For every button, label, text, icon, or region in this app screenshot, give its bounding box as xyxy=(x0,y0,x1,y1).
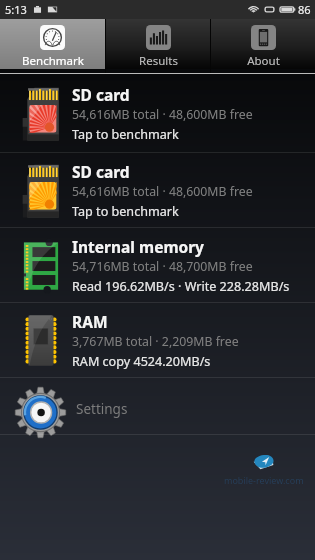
staticText: Settings xyxy=(76,400,128,418)
button[interactable]: Results xyxy=(106,19,210,69)
staticText: Tap to benchmark xyxy=(72,203,179,220)
button[interactable]: Settings xyxy=(0,378,315,434)
button[interactable]: RAM xyxy=(0,303,315,377)
button[interactable]: SD card xyxy=(0,153,315,227)
staticText: RAM xyxy=(72,311,108,332)
staticText: Results xyxy=(139,53,178,69)
staticText: SD card xyxy=(72,161,130,182)
staticText: 5:13 xyxy=(5,2,27,17)
staticText: 54,616MB total · 48,600MB free xyxy=(72,106,253,123)
staticText: Tap to benchmark xyxy=(72,126,179,143)
staticText: Benchmark xyxy=(22,53,84,69)
staticText: About xyxy=(247,53,280,69)
staticText: 54,716MB total · 48,700MB free xyxy=(72,258,253,275)
staticText: 86 xyxy=(298,2,311,17)
staticText: RAM copy 4524.20MB/s xyxy=(72,353,211,370)
button[interactable]: Benchmark xyxy=(0,19,105,69)
staticText: 3,767MB total · 2,209MB free xyxy=(72,333,239,350)
staticText: SD card xyxy=(72,84,130,105)
button[interactable]: Internal memory xyxy=(0,228,315,302)
staticText: Internal memory xyxy=(72,236,204,257)
staticText: Read 196.62MB/s · Write 228.28MB/s xyxy=(72,278,290,295)
button[interactable]: SD card xyxy=(0,74,315,152)
staticText: 54,616MB total · 48,600MB free xyxy=(72,183,253,200)
staticText: mobile-review.com xyxy=(224,474,304,486)
button[interactable]: About xyxy=(211,19,315,69)
